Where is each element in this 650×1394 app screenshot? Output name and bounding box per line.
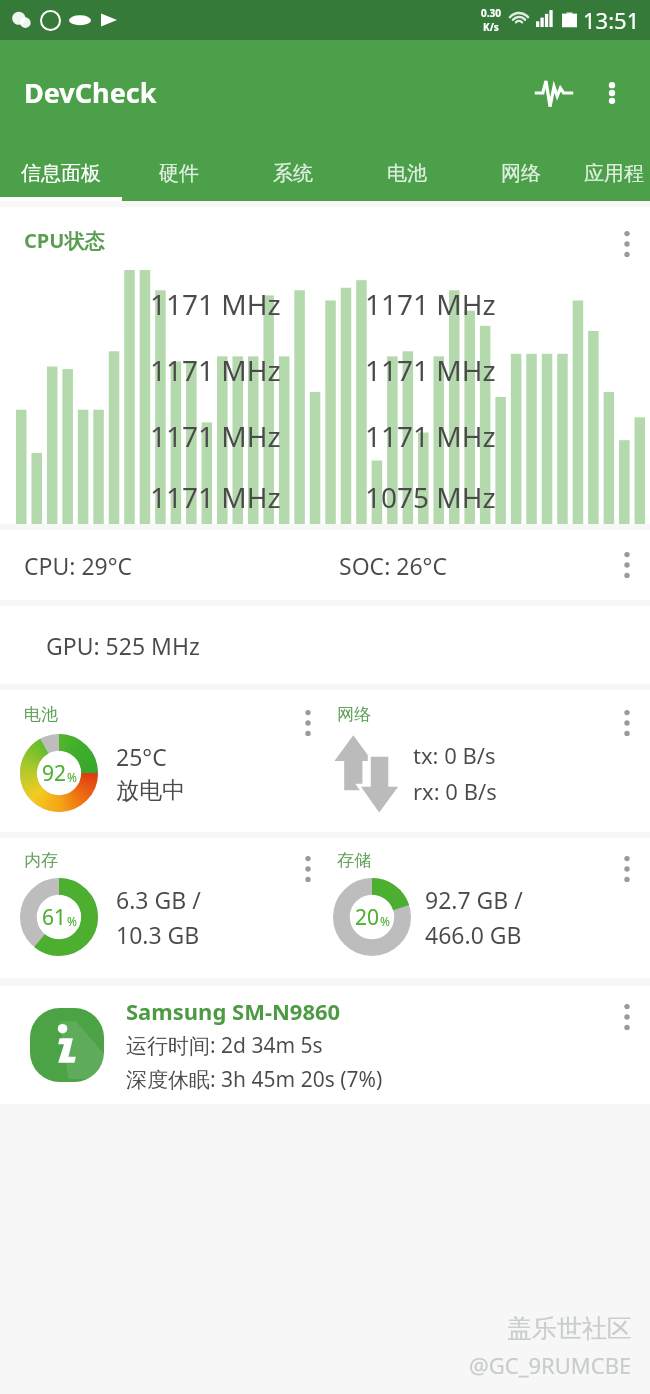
staticText: @GC_9RUMCBE — [469, 1350, 632, 1380]
staticText: 466.0 GB — [425, 919, 522, 950]
button[interactable]: 网络 — [464, 145, 578, 201]
staticText: tx: 0 B/s — [413, 740, 496, 770]
staticText: 1171 MHz — [365, 285, 496, 323]
button[interactable]: 应用程 — [578, 145, 650, 201]
staticText: DevCheck — [24, 74, 157, 111]
staticText: SOC: 26°C — [339, 550, 447, 581]
button[interactable]: CPU options — [610, 221, 644, 267]
staticText: 25°C — [116, 741, 167, 772]
staticText: 1171 MHz — [365, 417, 496, 455]
staticText: 应用程 — [584, 161, 644, 186]
staticText: 网络 — [501, 161, 541, 186]
button[interactable]: Memory options — [291, 846, 325, 892]
staticText: 放电中 — [116, 776, 185, 805]
staticText: CPU: 29°C — [24, 550, 133, 581]
staticText: 深度休眠: 3h 45m 20s (7%) — [126, 1065, 383, 1094]
staticText: 1171 MHz — [150, 285, 281, 323]
button[interactable]: 电池 — [350, 145, 464, 201]
staticText: rx: 0 B/s — [413, 776, 497, 806]
staticText: 20 — [355, 903, 380, 932]
button[interactable]: Temperature options — [610, 542, 644, 588]
staticText: 信息面板 — [21, 161, 101, 186]
staticText: 13:51 — [583, 5, 640, 35]
staticText: 1171 MHz — [150, 417, 281, 455]
staticText: 运行时间: 2d 34m 5s — [126, 1031, 323, 1060]
button[interactable]: Storage options — [610, 846, 644, 892]
staticText: % — [67, 913, 77, 929]
staticText: 92.7 GB / — [425, 884, 523, 915]
button[interactable]: Monitor — [530, 69, 578, 117]
staticText: 1171 MHz — [150, 351, 281, 389]
staticText: 61 — [42, 903, 67, 932]
button[interactable]: Device options — [610, 994, 644, 1040]
staticText: GPU: 525 MHz — [46, 630, 200, 661]
staticText: 10.3 GB — [116, 919, 200, 950]
staticText: Samsung SM-N9860 — [126, 996, 341, 1026]
staticText: 电池 — [387, 161, 427, 186]
staticText: % — [380, 913, 390, 929]
staticText: % — [67, 769, 77, 785]
staticText: 盖乐世社区 — [507, 1313, 632, 1344]
staticText: 6.3 GB / — [116, 884, 201, 915]
staticText: 网络 — [337, 704, 371, 725]
staticText: 系统 — [273, 161, 313, 186]
staticText: K/s — [483, 20, 499, 34]
button[interactable]: More options — [588, 69, 636, 117]
button[interactable]: 信息面板 — [0, 145, 122, 201]
button[interactable]: Battery options — [291, 700, 325, 746]
staticText: 存储 — [337, 850, 371, 871]
staticText: 0.30 — [481, 6, 501, 20]
staticText: CPU状态 — [24, 227, 105, 254]
button[interactable]: Network options — [610, 700, 644, 746]
button[interactable]: 系统 — [236, 145, 350, 201]
staticText: 电池 — [24, 704, 58, 725]
staticText: 1075 MHz — [365, 478, 496, 516]
staticText: 硬件 — [159, 161, 199, 186]
button[interactable]: 硬件 — [122, 145, 236, 201]
staticText: 92 — [42, 759, 67, 788]
staticText: 1171 MHz — [150, 478, 281, 516]
staticText: 1171 MHz — [365, 351, 496, 389]
staticText: 内存 — [24, 850, 58, 871]
